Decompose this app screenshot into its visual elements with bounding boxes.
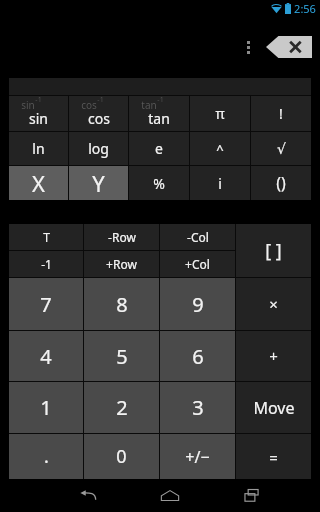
- button[interactable]: +Row: [84, 251, 159, 277]
- button[interactable]: =: [236, 434, 311, 479]
- button[interactable]: 4: [9, 331, 83, 381]
- button[interactable]: ^: [190, 132, 250, 165]
- button[interactable]: (): [251, 166, 311, 200]
- button[interactable]: 9: [160, 278, 235, 330]
- staticText: [ ]: [265, 238, 282, 263]
- button[interactable]: Home: [150, 479, 190, 512]
- button[interactable]: 0: [84, 434, 159, 479]
- button[interactable]: e: [129, 132, 189, 165]
- staticText: 1: [40, 394, 52, 421]
- staticText: sin: [21, 98, 35, 112]
- button[interactable]: π: [190, 96, 250, 131]
- staticText: Y: [92, 168, 105, 198]
- button[interactable]: tan: [129, 96, 189, 131]
- staticText: -Row: [108, 229, 136, 245]
- staticText: (): [276, 172, 286, 194]
- button[interactable]: log: [69, 132, 128, 165]
- staticText: ^: [216, 140, 224, 158]
- staticText: 7: [40, 291, 52, 318]
- staticText: 3: [192, 394, 204, 421]
- staticText: 9: [192, 291, 204, 318]
- button[interactable]: sin: [9, 96, 68, 131]
- staticText: T: [43, 229, 50, 245]
- button[interactable]: +Col: [160, 251, 235, 277]
- staticText: -Col: [187, 229, 209, 245]
- button[interactable]: %: [129, 166, 189, 200]
- staticText: -1: [41, 256, 52, 272]
- staticText: cos: [81, 98, 97, 112]
- button[interactable]: Recent apps: [232, 479, 272, 512]
- button[interactable]: 3: [160, 382, 235, 433]
- staticText: √: [277, 141, 286, 157]
- button[interactable]: [ ]: [236, 224, 311, 277]
- staticText: =: [269, 447, 278, 467]
- button[interactable]: 5: [84, 331, 159, 381]
- button[interactable]: cos: [69, 96, 128, 131]
- staticText: Move: [253, 397, 295, 419]
- staticText: +Col: [185, 256, 210, 272]
- button[interactable]: 2: [84, 382, 159, 433]
- staticText: sin: [29, 109, 48, 128]
- button[interactable]: X: [9, 166, 68, 200]
- staticText: ln: [32, 139, 45, 158]
- button[interactable]: √: [251, 132, 311, 165]
- staticText: e: [155, 139, 163, 158]
- staticText: 2:56: [294, 1, 316, 16]
- button[interactable]: ln: [9, 132, 68, 165]
- button[interactable]: i: [190, 166, 250, 200]
- button[interactable]: +/−: [160, 434, 235, 479]
- staticText: 4: [40, 343, 52, 370]
- staticText: 0: [116, 444, 127, 469]
- staticText: 8: [116, 291, 128, 318]
- staticText: +/−: [185, 446, 210, 468]
- staticText: +Row: [106, 256, 137, 272]
- button[interactable]: -Col: [160, 224, 235, 250]
- button[interactable]: Y: [69, 166, 128, 200]
- button[interactable]: -1: [9, 251, 83, 277]
- staticText: π: [215, 104, 225, 123]
- button[interactable]: 8: [84, 278, 159, 330]
- staticText: .: [44, 444, 49, 469]
- button[interactable]: T: [9, 224, 83, 250]
- staticText: X: [32, 168, 45, 198]
- button[interactable]: Delete: [266, 36, 312, 58]
- button[interactable]: 6: [160, 331, 235, 381]
- button[interactable]: -Row: [84, 224, 159, 250]
- staticText: i: [218, 174, 222, 193]
- button[interactable]: 7: [9, 278, 83, 330]
- button[interactable]: Move: [236, 382, 311, 433]
- staticText: tan: [141, 98, 157, 112]
- button[interactable]: 1: [9, 382, 83, 433]
- staticText: cos: [88, 109, 110, 128]
- button[interactable]: .: [9, 434, 83, 479]
- button[interactable]: !: [251, 96, 311, 131]
- staticText: -1: [35, 95, 42, 105]
- staticText: -1: [157, 95, 164, 105]
- staticText: 5: [116, 343, 128, 370]
- staticText: 2: [116, 394, 128, 421]
- staticText: !: [279, 104, 283, 123]
- staticText: 6: [192, 343, 204, 370]
- staticText: log: [88, 139, 109, 158]
- button[interactable]: More options: [238, 34, 258, 60]
- staticText: %: [153, 174, 165, 193]
- button[interactable]: Back: [68, 479, 108, 512]
- staticText: +: [269, 346, 278, 366]
- staticText: -1: [97, 95, 104, 105]
- button[interactable]: ×: [236, 278, 311, 330]
- button[interactable]: +: [236, 331, 311, 381]
- staticText: tan: [148, 109, 170, 128]
- staticText: ×: [269, 294, 278, 314]
